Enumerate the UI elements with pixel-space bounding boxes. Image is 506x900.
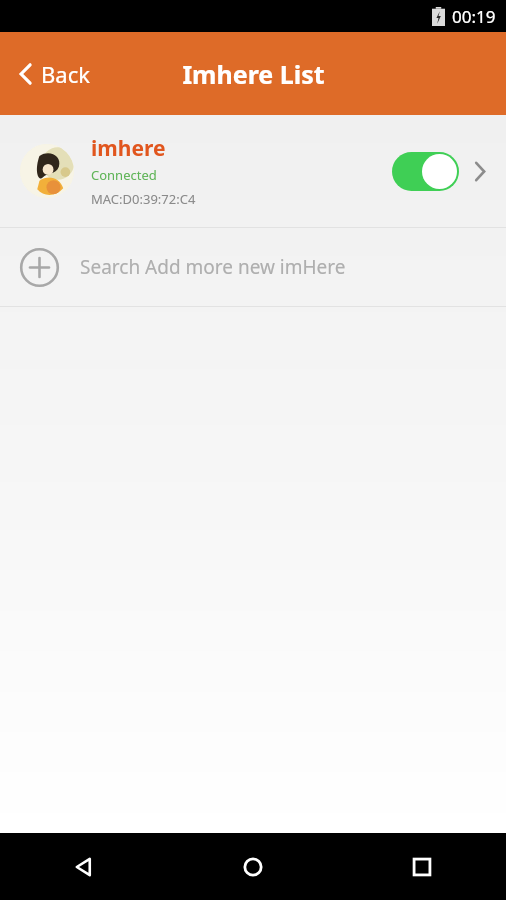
staticText: Search Add more new imHere: [80, 254, 346, 280]
button[interactable]: Search Add more new imHere: [0, 228, 506, 306]
button[interactable]: Back: [0, 51, 106, 97]
button[interactable]: imhere: [0, 115, 506, 227]
staticText: MAC:D0:39:72:C4: [91, 190, 196, 208]
button[interactable]: Device connection toggle, on: [392, 152, 459, 191]
button[interactable]: Recent apps: [337, 833, 506, 900]
staticText: Connected: [91, 166, 157, 184]
button[interactable]: Back: [0, 833, 168, 900]
button[interactable]: Open device details: [468, 159, 492, 183]
staticText: Imhere List: [182, 57, 325, 91]
staticText: imhere: [91, 134, 166, 163]
button[interactable]: Home: [168, 833, 337, 900]
staticText: 00:19: [452, 5, 496, 28]
staticText: Back: [41, 59, 90, 89]
